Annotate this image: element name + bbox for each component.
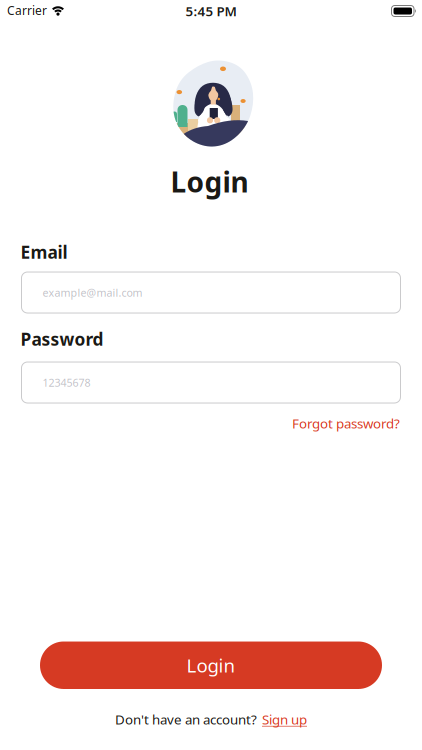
staticText: Login bbox=[186, 653, 235, 678]
staticText: Login bbox=[170, 163, 248, 200]
staticText: 12345678 bbox=[42, 375, 90, 390]
staticText: Don't have an account? bbox=[115, 710, 257, 728]
button[interactable]: Forgot password? bbox=[292, 414, 400, 432]
staticText: Forgot password? bbox=[292, 414, 400, 432]
button[interactable]: 12345678 bbox=[21, 362, 400, 403]
staticText: 5:45 PM bbox=[185, 2, 236, 20]
button[interactable]: example@mail.com bbox=[21, 272, 400, 313]
staticText: Carrier bbox=[7, 2, 47, 18]
staticText: Email bbox=[20, 240, 67, 263]
button[interactable]: Login bbox=[40, 641, 382, 689]
staticText: example@mail.com bbox=[42, 285, 142, 300]
button[interactable]: Sign up bbox=[262, 710, 307, 728]
staticText: Sign up bbox=[262, 710, 307, 728]
staticText: Password bbox=[20, 327, 103, 350]
